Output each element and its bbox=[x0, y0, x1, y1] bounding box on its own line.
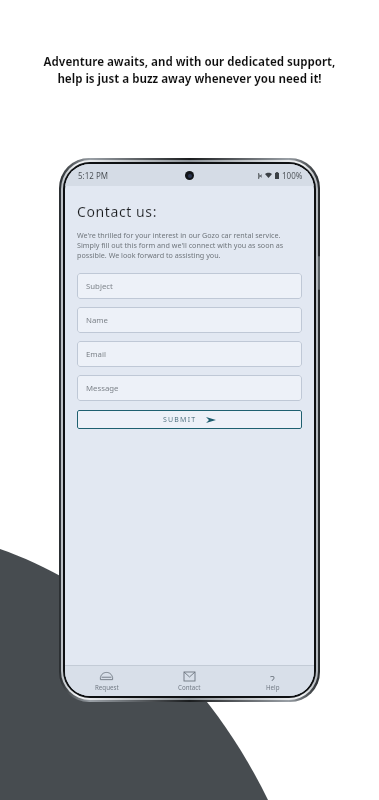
staticText: Contact us: bbox=[77, 202, 158, 221]
staticText: 5:12 PM bbox=[78, 170, 109, 181]
staticText: Subject bbox=[86, 281, 113, 292]
staticText: Request bbox=[95, 683, 119, 691]
staticText: Message bbox=[86, 383, 119, 394]
other: Contact bbox=[184, 672, 195, 681]
button[interactable]: Name bbox=[77, 307, 302, 333]
button[interactable]: Contact bbox=[148, 669, 231, 694]
button[interactable]: Subject bbox=[77, 273, 302, 299]
other: Help bbox=[267, 672, 278, 681]
button[interactable]: Help bbox=[231, 669, 314, 694]
staticText: ? bbox=[270, 672, 275, 681]
staticText: SUBMIT bbox=[163, 415, 197, 425]
staticText: Name bbox=[86, 315, 108, 326]
staticText: We're thrilled for your interest in our … bbox=[77, 230, 302, 260]
staticText: Adventure awaits, and with our dedicated… bbox=[0, 54, 379, 86]
other: Request bbox=[100, 672, 113, 681]
button[interactable]: Message bbox=[77, 375, 302, 401]
staticText: Email bbox=[86, 349, 107, 360]
staticText: 100% bbox=[282, 170, 303, 181]
staticText: Help bbox=[266, 683, 280, 691]
button[interactable]: SUBMIT bbox=[77, 410, 302, 429]
button[interactable]: Email bbox=[77, 341, 302, 367]
staticText: Contact bbox=[178, 683, 201, 691]
button[interactable]: Request bbox=[65, 669, 148, 694]
